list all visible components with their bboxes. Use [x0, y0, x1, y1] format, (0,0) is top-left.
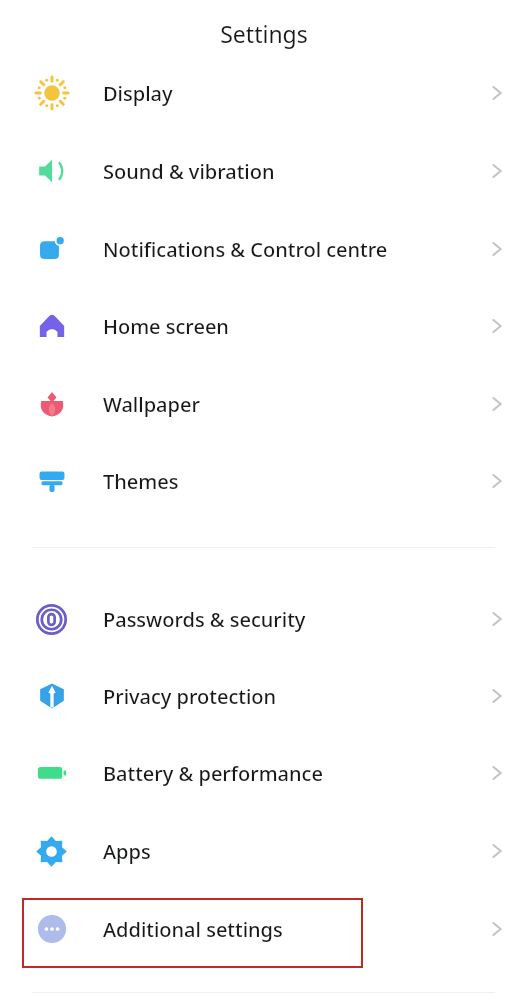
staticText: Home screen	[103, 313, 229, 340]
staticText: Privacy protection	[103, 683, 277, 710]
button[interactable]: Themes	[0, 442, 527, 520]
button[interactable]: Display	[0, 54, 527, 132]
button[interactable]: Battery & performance	[0, 734, 527, 812]
staticText: Passwords & security	[103, 606, 306, 633]
staticText: Display	[103, 80, 173, 107]
staticText: Battery & performance	[103, 760, 323, 787]
button[interactable]: Additional settings	[0, 890, 527, 968]
button[interactable]: Apps	[0, 812, 527, 890]
button[interactable]: Home screen	[0, 287, 527, 365]
button[interactable]: Passwords & security	[0, 580, 527, 658]
staticText: Settings	[220, 18, 308, 49]
button[interactable]: Privacy protection	[0, 657, 527, 735]
staticText: Apps	[103, 838, 151, 865]
staticText: Sound & vibration	[103, 158, 275, 185]
staticText: Additional settings	[103, 916, 283, 943]
button[interactable]: Wallpaper	[0, 365, 527, 443]
staticText: Themes	[103, 468, 179, 495]
staticText: Notifications & Control centre	[103, 236, 388, 263]
staticText: Wallpaper	[103, 391, 200, 418]
button[interactable]: Sound & vibration	[0, 132, 527, 210]
button[interactable]: Notifications & Control centre	[0, 210, 527, 288]
